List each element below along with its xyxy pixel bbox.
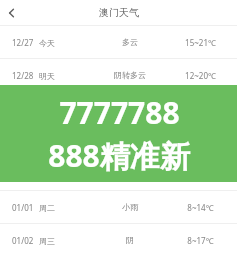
staticText: 周三 [39,236,55,246]
staticText: 周二 [39,203,55,213]
button[interactable]: 12/30 [0,125,237,157]
staticText: 阴 [126,235,134,245]
staticText: 澳门天气 [99,6,139,19]
button[interactable]: 01/01 [0,191,237,223]
staticText: 多云 [122,37,138,47]
button[interactable]: Back [0,1,24,25]
staticText: 今天 [39,38,55,48]
staticText: 8~13℃ [187,136,214,147]
staticText: 7777788 [59,92,180,133]
button[interactable]: 12/31 [0,158,237,190]
staticText: 12/28 [12,70,34,81]
staticText: 01/02 [12,235,34,246]
staticText: 阵雨 [122,103,138,113]
staticText: 12~20℃ [185,70,216,81]
button[interactable]: 7777788 [0,85,237,182]
staticText: 阴转多云 [114,70,146,80]
staticText: 12/27 [12,37,34,48]
staticText: 01/01 [12,202,34,213]
staticText: 明天 [39,71,55,81]
staticText: 周日 [39,137,55,147]
staticText: 小雨 [122,169,138,179]
staticText: 8~14℃ [187,202,214,213]
staticText: 小雨 [122,202,138,212]
staticText: 小雨 [122,136,138,146]
button[interactable]: 12/29 [0,92,237,124]
staticText: 15~21℃ [185,37,216,48]
button[interactable]: 12/27 [0,26,237,58]
button[interactable]: 01/02 [0,224,237,256]
staticText: 888精准新 [48,135,190,176]
button[interactable]: 12/28 [0,59,237,91]
staticText: 8~17℃ [187,235,214,246]
